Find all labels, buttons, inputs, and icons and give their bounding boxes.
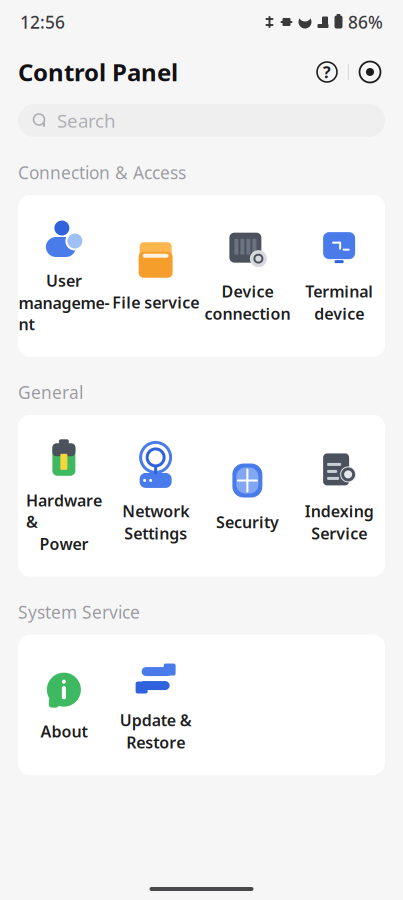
staticText: Terminal: [305, 281, 373, 302]
staticText: General: [18, 381, 83, 404]
staticText: Device: [221, 281, 273, 302]
staticText: 12:56: [20, 10, 65, 33]
button[interactable]: About: [18, 664, 110, 746]
staticText: Restore: [126, 732, 185, 753]
button[interactable]: Device: [201, 224, 293, 328]
button[interactable]: Terminal: [293, 224, 385, 328]
button[interactable]: Search: [18, 104, 385, 137]
staticText: Indexing: [305, 500, 374, 522]
button[interactable]: Indexing: [293, 443, 385, 548]
staticText: System Service: [18, 600, 140, 623]
staticText: Search: [57, 108, 116, 133]
staticText: Update &: [120, 709, 192, 731]
button[interactable]: Account: [355, 57, 385, 87]
staticText: 86%: [348, 10, 383, 33]
button[interactable]: Update &: [110, 652, 202, 757]
staticText: connection: [204, 303, 290, 324]
button[interactable]: Security: [201, 454, 293, 537]
staticText: Security: [216, 511, 279, 533]
button[interactable]: File service: [110, 235, 202, 317]
staticText: Control Panel: [18, 56, 178, 88]
button[interactable]: User: [18, 213, 110, 339]
button[interactable]: Network: [110, 443, 202, 548]
staticText: management: [18, 292, 109, 335]
button[interactable]: Hardware &: [18, 433, 110, 558]
staticText: Network: [122, 500, 189, 522]
button[interactable]: Help: [312, 57, 342, 87]
staticText: Hardware &: [26, 490, 102, 532]
staticText: ?: [323, 61, 331, 83]
staticText: Settings: [124, 523, 187, 544]
staticText: Connection & Access: [18, 161, 186, 184]
staticText: File service: [112, 292, 199, 313]
staticText: Power: [39, 533, 88, 554]
staticText: About: [40, 721, 87, 742]
staticText: User: [46, 270, 82, 291]
staticText: device: [314, 303, 364, 324]
staticText: Service: [311, 523, 367, 544]
